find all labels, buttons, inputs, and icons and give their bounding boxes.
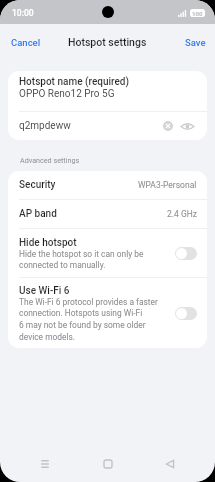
button[interactable]: AP band	[8, 200, 207, 228]
button[interactable]: Hide hotspot	[8, 229, 207, 277]
button[interactable]: Clear text	[163, 121, 173, 131]
button[interactable]: Recent apps	[28, 455, 62, 473]
staticText: Cancel	[11, 37, 41, 48]
staticText: Hotspot name (required)	[19, 76, 130, 88]
staticText: The Wi-Fi 6 protocol provides a faster c…	[19, 297, 158, 342]
staticText: AP band	[19, 208, 57, 220]
button[interactable]: Security	[8, 171, 207, 199]
button[interactable]: Hide hotspot	[175, 247, 197, 260]
staticText: Hide the hotspot so it can only be conne…	[19, 249, 144, 270]
staticText: Save	[185, 37, 206, 48]
staticText: OPPO Reno12 Pro 5G	[19, 88, 115, 100]
button[interactable]: Back	[153, 455, 187, 473]
button[interactable]: Home	[91, 455, 125, 473]
button[interactable]: Use Wi-Fi 6	[8, 278, 207, 348]
staticText: Hotspot settings	[68, 36, 147, 48]
button[interactable]: Hotspot name (required)	[8, 71, 207, 111]
staticText: 10:00	[12, 8, 34, 18]
button[interactable]: Save	[174, 29, 215, 56]
staticText: WPA3-Personal	[138, 180, 197, 190]
staticText: Advanced settings	[20, 156, 80, 164]
staticText: q2mpdeww	[19, 120, 71, 132]
staticText: Hide hotspot	[19, 237, 77, 249]
staticText: 100	[192, 10, 203, 17]
staticText: Security	[19, 179, 56, 191]
button[interactable]: Show password	[181, 122, 194, 131]
staticText: 2.4 GHz	[167, 209, 197, 219]
staticText: Use Wi-Fi 6	[19, 285, 70, 297]
button[interactable]: Cancel	[0, 29, 52, 56]
button[interactable]: Use Wi-Fi 6	[175, 307, 197, 320]
